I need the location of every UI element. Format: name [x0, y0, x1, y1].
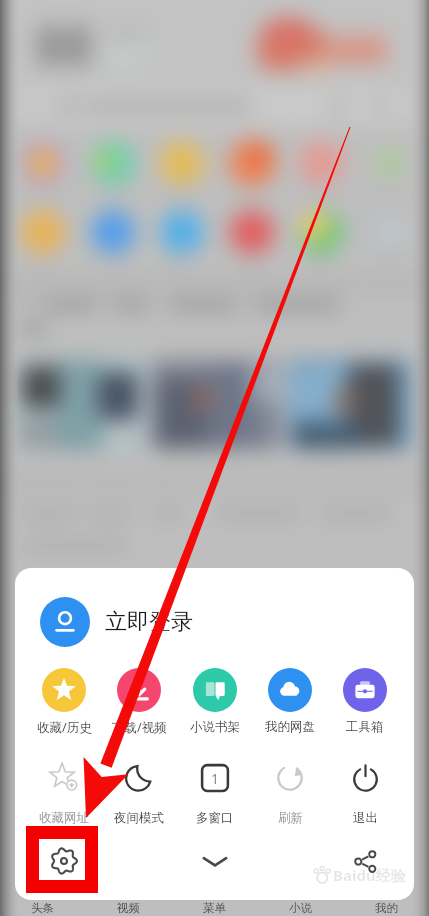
button[interactable]: 刷新: [259, 756, 321, 826]
button[interactable]: 视频: [85, 899, 171, 916]
staticText: 头条: [31, 901, 54, 915]
button[interactable]: 收藏网址: [33, 756, 95, 826]
button[interactable]: 头条: [0, 899, 85, 916]
button[interactable]: 收藏/历史: [33, 668, 95, 736]
staticText: 小说: [289, 901, 312, 915]
staticText: 收藏/历史: [37, 719, 92, 736]
staticText: 立即登录: [105, 608, 193, 636]
staticText: Baidu经验: [333, 865, 406, 885]
button[interactable]: 小说: [257, 899, 343, 916]
button[interactable]: 1: [184, 756, 246, 826]
button[interactable]: 退出: [334, 756, 396, 826]
button[interactable]: 我的网盘: [259, 668, 321, 735]
staticText: 收藏网址: [39, 810, 89, 826]
button[interactable]: 菜单: [171, 899, 257, 916]
staticText: 工具箱: [346, 719, 384, 735]
staticText: 多窗口: [196, 810, 234, 826]
button[interactable]: Collapse panel: [187, 833, 243, 889]
staticText: 视频: [117, 901, 140, 915]
button[interactable]: Share: [337, 833, 393, 889]
button[interactable]: Settings: [36, 833, 92, 889]
button[interactable]: 立即登录: [40, 597, 290, 647]
staticText: 夜间模式: [114, 810, 164, 826]
staticText: 1: [211, 769, 220, 788]
staticText: 退出: [353, 810, 378, 826]
staticText: 下载/视频: [112, 719, 167, 736]
staticText: 小说书架: [190, 719, 240, 735]
button[interactable]: 小说书架: [184, 668, 246, 735]
button[interactable]: 下载/视频: [108, 668, 170, 736]
button[interactable]: 工具箱: [334, 668, 396, 735]
button[interactable]: 夜间模式: [108, 756, 170, 826]
button[interactable]: 我的: [343, 899, 429, 916]
staticText: 刷新: [278, 810, 303, 826]
staticText: 我的网盘: [265, 719, 315, 735]
staticText: 菜单: [203, 901, 226, 915]
staticText: 我的: [375, 901, 398, 915]
